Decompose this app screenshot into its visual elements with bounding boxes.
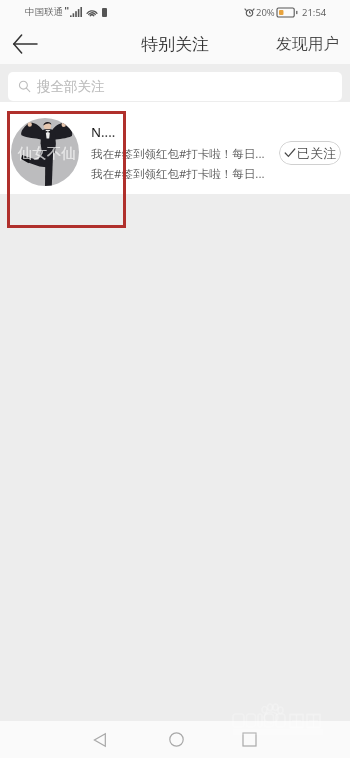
- button[interactable]: Back: [76, 721, 124, 758]
- button[interactable]: 仙女不仙: [0, 102, 350, 194]
- button[interactable]: Home: [152, 721, 200, 758]
- staticText: N....: [91, 123, 116, 141]
- button[interactable]: 已关注: [279, 141, 341, 165]
- staticText: 20%: [256, 6, 275, 19]
- staticText: 我在#签到领红包#打卡啦！每日...: [91, 166, 265, 182]
- staticText: 搜全部关注: [37, 78, 105, 95]
- button[interactable]: 搜全部关注: [8, 72, 342, 101]
- staticText: 21:54: [302, 6, 327, 19]
- staticText: 我在#签到领红包#打卡啦！每日...: [91, 146, 265, 162]
- staticText: 已关注: [297, 145, 336, 161]
- staticText: 特别关注: [141, 34, 209, 55]
- button[interactable]: Recents: [225, 721, 273, 758]
- staticText: 发现用户: [276, 34, 340, 54]
- button[interactable]: Back: [0, 24, 50, 64]
- staticText: 仙女不仙: [18, 144, 76, 162]
- staticText: 中国联通: [25, 6, 63, 18]
- button[interactable]: 发现用户: [262, 24, 350, 64]
